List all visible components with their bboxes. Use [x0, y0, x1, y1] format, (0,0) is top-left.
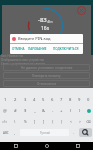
- staticText: 6: [51, 97, 54, 103]
- staticText: {: [52, 119, 54, 124]
- button[interactable]: Отключиться: [3, 80, 90, 87]
- staticText: \: [14, 119, 16, 124]
- button[interactable]: Повторить попытку: [3, 72, 90, 79]
- button[interactable]: =\<: [0, 116, 10, 127]
- staticText: Повторить попытку: [32, 74, 61, 78]
- staticText: ,: [14, 130, 16, 135]
- staticText: Тип: Неизвестно: [1, 54, 24, 58]
- staticText: ПОДКЛЮЧИТЬСЯ: [53, 47, 79, 51]
- button[interactable]: <: [66, 116, 75, 127]
- staticText: _: [34, 108, 36, 114]
- button[interactable]: 4: [30, 94, 39, 105]
- button[interactable]: &: [39, 105, 48, 116]
- staticText: Отображаемое имя: устройство: [1, 58, 45, 62]
- button[interactable]: @: [0, 105, 10, 116]
- staticText: 16s: [41, 25, 50, 32]
- staticText: 7: [60, 97, 63, 103]
- staticText: (: [70, 108, 72, 114]
- button[interactable]: -: [48, 105, 57, 116]
- staticText: $: [24, 108, 27, 114]
- staticText: ): [79, 108, 81, 114]
- staticText: =\<: [2, 119, 8, 124]
- button[interactable]: ,: [11, 127, 19, 138]
- staticText: ⌫: [86, 120, 91, 124]
- staticText: 4: [33, 97, 36, 103]
- staticText: ABC: [3, 131, 9, 135]
- button[interactable]: ]: [39, 116, 48, 127]
- button[interactable]: Search: [79, 128, 92, 137]
- button[interactable]: Recents: [62, 142, 93, 150]
- button[interactable]: Русский: [20, 129, 69, 136]
- staticText: 9: [78, 97, 81, 103]
- staticText: 5: [42, 97, 45, 103]
- button[interactable]: 7: [57, 94, 66, 105]
- staticText: Связь с устройством: не связано: [1, 62, 46, 66]
- button[interactable]: 6: [48, 94, 57, 105]
- button[interactable]: 5: [39, 94, 48, 105]
- staticText: 8: [69, 97, 72, 103]
- staticText: -: [52, 108, 54, 114]
- button[interactable]: _: [30, 105, 39, 116]
- button[interactable]: ⌫: [84, 116, 93, 127]
- staticText: +: [60, 108, 63, 114]
- button[interactable]: }: [57, 116, 66, 127]
- button[interactable]: Back: [0, 142, 31, 150]
- staticText: Русский: [40, 131, 50, 135]
- button[interactable]: Stop scan: [77, 6, 86, 15]
- button[interactable]: ABC: [0, 127, 11, 138]
- staticText: -83: [38, 16, 47, 24]
- staticText: dBm: [47, 20, 53, 24]
- button[interactable]: [84, 105, 93, 116]
- button[interactable]: Home: [31, 142, 62, 150]
- button[interactable]: ): [75, 105, 84, 116]
- button[interactable]: \: [10, 116, 20, 127]
- staticText: ПАРОВАНИЕ: [28, 47, 47, 51]
- staticText: @: [3, 108, 7, 114]
- staticText: ]: [43, 119, 45, 124]
- staticText: <: [70, 119, 72, 124]
- staticText: 2: [14, 97, 17, 103]
- staticText: Введите PIN-код: [18, 36, 51, 41]
- button[interactable]: Не удалось установить соединение: [3, 64, 90, 71]
- staticText: ОТМЕНА: [12, 47, 25, 51]
- staticText: #: [14, 108, 17, 114]
- staticText: Отключиться: [37, 82, 57, 86]
- button[interactable]: 0: [84, 94, 93, 105]
- button[interactable]: 9: [75, 94, 84, 105]
- staticText: [: [34, 119, 36, 124]
- button[interactable]: 1: [0, 94, 10, 105]
- button[interactable]: >: [75, 116, 84, 127]
- button[interactable]: [: [30, 116, 39, 127]
- staticText: Не удалось установить соединение: [21, 66, 73, 70]
- button[interactable]: $: [20, 105, 30, 116]
- button[interactable]: {: [48, 116, 57, 127]
- button[interactable]: 8: [66, 94, 75, 105]
- button[interactable]: %: [20, 116, 30, 127]
- staticText: %: [24, 119, 27, 124]
- staticText: .: [73, 130, 75, 135]
- button[interactable]: +: [57, 105, 66, 116]
- staticText: 3: [24, 97, 27, 103]
- button[interactable]: 3: [20, 94, 30, 105]
- staticText: >: [79, 119, 81, 124]
- staticText: 1: [4, 97, 7, 103]
- staticText: 0: [87, 97, 90, 103]
- staticText: &: [42, 108, 46, 114]
- button[interactable]: #: [10, 105, 20, 116]
- button[interactable]: (: [66, 105, 75, 116]
- staticText: }: [61, 119, 63, 124]
- button[interactable]: 2: [10, 94, 20, 105]
